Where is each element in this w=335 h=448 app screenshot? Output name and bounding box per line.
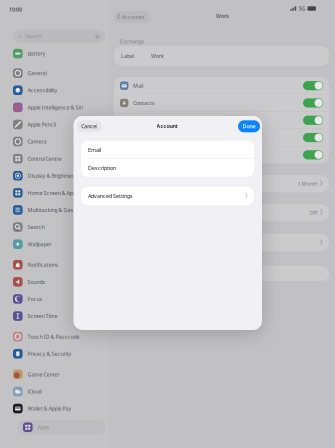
staticText: Work — [216, 12, 229, 20]
staticText: Home Screen & App Library — [28, 189, 93, 196]
staticText: Description — [88, 164, 116, 172]
button[interactable]: Description — [81, 159, 254, 177]
button[interactable]: Apple Intelligence & Siri — [6, 99, 102, 116]
button[interactable]: iCloud — [6, 383, 102, 400]
staticText: 10:00 — [9, 6, 22, 13]
staticText: Notifications — [28, 261, 59, 268]
staticText: Screen Time — [28, 312, 58, 320]
staticText: Accessibility — [28, 87, 58, 94]
button[interactable]: Done — [238, 120, 260, 132]
button[interactable]: Contacts — [114, 94, 329, 112]
staticText: Accounts — [122, 13, 145, 21]
button[interactable]: Mail — [114, 77, 329, 94]
button[interactable]: General — [6, 65, 102, 82]
staticText: Battery — [28, 50, 46, 57]
button[interactable]: Advanced Settings — [81, 187, 254, 205]
staticText: 5G — [298, 5, 305, 12]
staticText: Focus — [28, 295, 43, 302]
staticText: Cancel — [81, 123, 97, 130]
button[interactable]: Accounts — [114, 11, 150, 23]
staticText: Wallpaper — [28, 241, 52, 248]
staticText: Wallet & Apple Pay — [28, 405, 72, 412]
button[interactable]: Calendars — [114, 112, 329, 129]
button[interactable]: Wallpaper — [6, 236, 102, 253]
staticText: Off — [309, 209, 317, 216]
staticText: 1 Month — [297, 180, 317, 187]
button[interactable]: Accessibility — [6, 82, 102, 99]
button[interactable]: Notes — [114, 146, 329, 163]
staticText: Mail — [133, 82, 143, 89]
staticText: ⌕ — [18, 33, 22, 39]
button[interactable]: Privacy & Security — [6, 345, 102, 362]
staticText: Sounds — [28, 278, 46, 285]
staticText: Contacts — [133, 99, 155, 106]
staticText: Email — [88, 146, 101, 154]
staticText: Label — [121, 52, 134, 60]
staticText: Advanced Settings — [88, 192, 133, 200]
button[interactable]: Touch ID & Passcode — [6, 328, 102, 345]
staticText: Control Centre — [28, 155, 62, 162]
button[interactable]: Home Screen & App Library — [6, 184, 102, 201]
button[interactable]: Display & Brightness — [6, 167, 102, 184]
staticText: Work — [151, 52, 164, 60]
button[interactable]: Sounds — [6, 273, 102, 290]
button[interactable]: Search — [6, 218, 102, 236]
button[interactable]: Apple Pencil — [6, 116, 102, 133]
button[interactable]: Screen Time — [6, 307, 102, 325]
staticText: Display & Brightness — [28, 172, 78, 179]
staticText: Touch ID & Passcode — [28, 333, 80, 340]
button[interactable]: Game Center — [6, 366, 102, 383]
staticText: Apple Pencil — [28, 121, 56, 128]
button[interactable]: Control Centre — [6, 150, 102, 167]
button[interactable]: Wallet & Apple Pay — [6, 400, 102, 417]
staticText: Multitasking & Gestures — [28, 206, 87, 213]
staticText: Search — [28, 223, 45, 231]
staticText: Done — [242, 123, 255, 130]
button[interactable]: Notifications — [6, 256, 102, 273]
button[interactable]: Email — [81, 141, 254, 159]
button[interactable]: Multitasking & Gestures — [6, 201, 102, 218]
button[interactable]: Automatic Reply — [114, 204, 329, 221]
staticText: Account — [156, 122, 177, 130]
staticText: Camera — [28, 138, 47, 145]
button[interactable]: Camera — [6, 133, 102, 150]
staticText: Search — [25, 33, 42, 40]
button[interactable]: Focus — [6, 290, 102, 307]
staticText: ◍ — [95, 33, 100, 39]
staticText: Apple Intelligence & Siri — [28, 104, 83, 111]
button[interactable]: Cancel — [76, 120, 102, 132]
staticText: Apps — [38, 424, 50, 431]
staticText: General — [28, 70, 47, 77]
button[interactable]: Reminders — [114, 129, 329, 146]
staticText: Privacy & Security — [28, 350, 72, 357]
button[interactable]: Mail Days to Sync — [114, 175, 329, 192]
button[interactable]: Battery — [6, 45, 102, 62]
button[interactable]: Account — [114, 234, 329, 251]
staticText: Exchange — [120, 38, 144, 45]
staticText: Game Center — [28, 371, 60, 378]
staticText: iCloud — [28, 388, 42, 395]
